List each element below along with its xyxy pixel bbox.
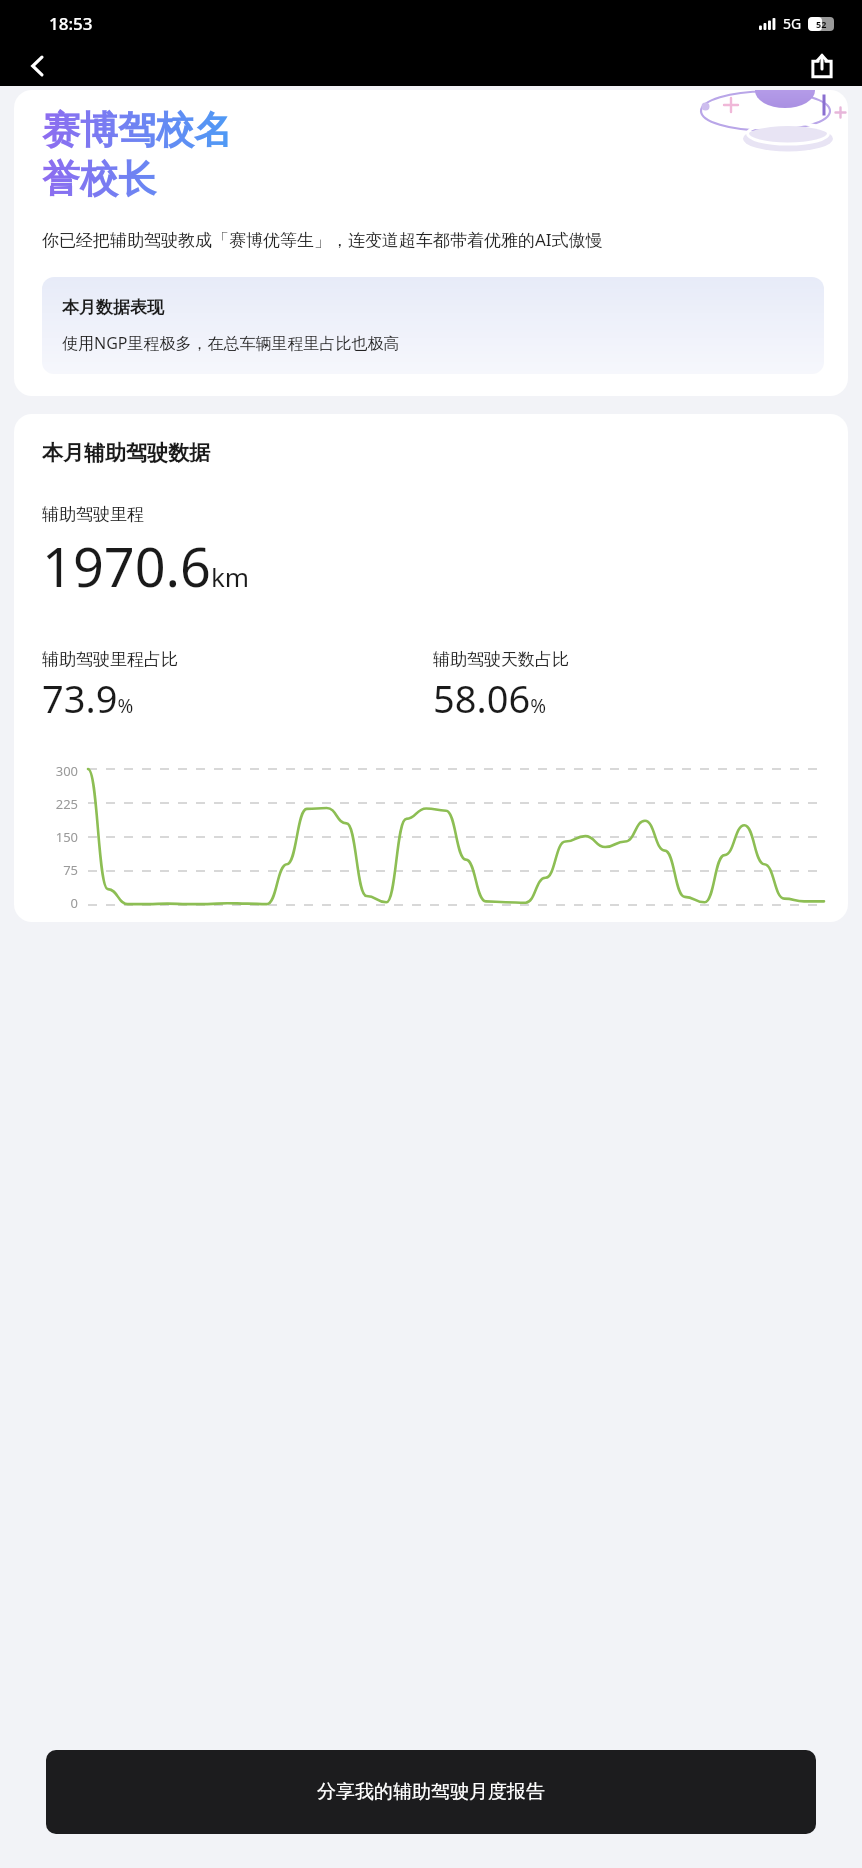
staticText: 300 [55,762,78,780]
staticText: 75 [63,861,78,879]
staticText: 本月辅助驾驶数据 [42,440,210,466]
staticText: 赛博驾校名 誉校长 [42,106,232,204]
staticText: 使用NGP里程极多，在总车辆里程里占比也极高 [62,332,400,354]
button[interactable]: 分享我的辅助驾驶月度报告 [46,1750,816,1834]
staticText: 58.06% [433,672,546,724]
staticText: 1970.6km [42,529,250,603]
staticText: 18:53 [49,12,93,35]
staticText: 52 [816,18,827,30]
staticText: 73.9% [42,672,134,724]
staticText: 辅助驾驶天数占比 [433,649,569,670]
staticText: 分享我的辅助驾驶月度报告 [317,1780,545,1804]
button[interactable]: Back [14,46,62,86]
staticText: 225 [55,795,78,813]
staticText: 5G [783,14,802,33]
staticText: 本月数据表现 [62,297,164,318]
staticText: 你已经把辅助驾驶教成「赛博优等生」，连变道超车都带着优雅的AI式傲慢 [42,228,603,251]
staticText: 辅助驾驶里程 [42,504,144,525]
staticText: 150 [55,828,78,846]
button[interactable]: Share [798,46,846,86]
staticText: 0 [70,894,78,912]
staticText: 辅助驾驶里程占比 [42,649,178,670]
